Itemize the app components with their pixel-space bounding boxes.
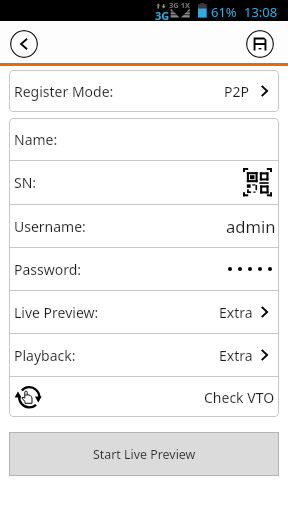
staticText: SN: [14,173,37,192]
button[interactable]: Username: [9,205,279,247]
button[interactable]: Start Live Preview [9,432,279,476]
staticText: Playback: [14,346,76,365]
button[interactable]: Password: [9,248,279,290]
button[interactable]: Playback: [9,334,279,376]
staticText: 61% [211,3,237,21]
staticText: 3G 1X [169,0,190,10]
staticText: admin [226,215,276,238]
staticText: Check VTO [204,388,275,407]
staticText: Extra [219,346,253,365]
staticText: Password: [14,260,82,279]
other: Check VTO [14,384,42,410]
button[interactable]: Name: [9,118,279,160]
button[interactable]: Register Mode: [9,70,279,112]
button[interactable]: Back [10,30,38,58]
staticText: Username: [14,217,86,236]
staticText: Start Live Preview [93,446,196,463]
staticText: Register Mode: [14,82,114,101]
button[interactable]: Live Preview: [9,291,279,333]
button[interactable]: Save [246,30,274,58]
staticText: Extra [219,303,253,322]
button[interactable]: SN: [9,161,279,204]
staticText: P2P [224,82,249,101]
staticText: 13:08 [244,3,278,21]
staticText: Live Preview: [14,303,99,322]
other: Scan QR code [243,168,272,196]
button[interactable]: Check VTO [9,377,279,417]
staticText: 3G [155,8,170,23]
staticText: Name: [14,130,58,149]
